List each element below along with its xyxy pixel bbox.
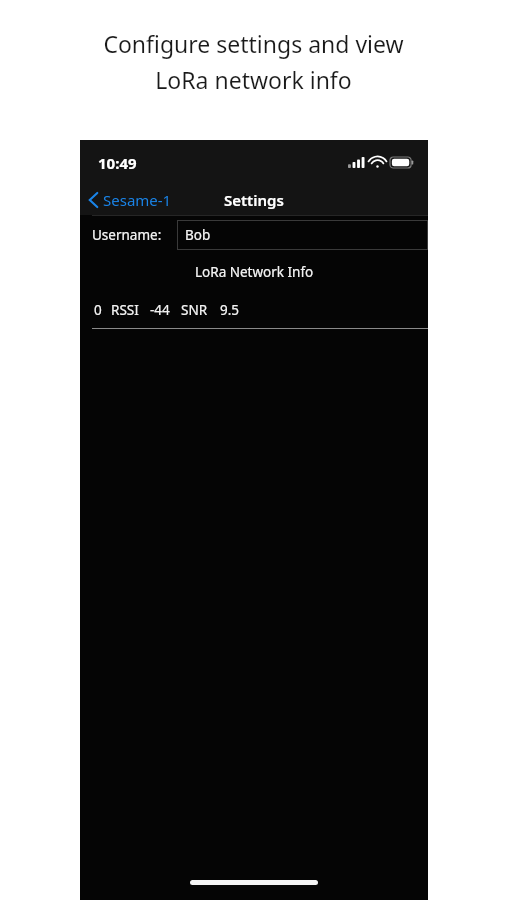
- staticText: Settings: [224, 190, 284, 210]
- other: Battery: [390, 157, 414, 168]
- other: Cellular signal: [348, 157, 365, 168]
- staticText: SNR: [181, 301, 208, 319]
- staticText: Username:: [92, 226, 162, 244]
- staticText: LoRa network info: [155, 64, 352, 95]
- staticText: RSSI: [111, 301, 139, 319]
- button[interactable]: Bob: [177, 220, 428, 250]
- other: Wi-Fi: [370, 157, 385, 168]
- staticText: Bob: [185, 226, 211, 244]
- button[interactable]: Sesame-1: [80, 187, 180, 213]
- staticText: 0: [94, 301, 102, 319]
- staticText: Sesame-1: [103, 190, 172, 210]
- staticText: LoRa Network Info: [195, 263, 314, 281]
- staticText: -44: [150, 301, 170, 319]
- button[interactable]: Username:: [80, 216, 428, 253]
- staticText: 10:49: [98, 153, 137, 173]
- staticText: Configure settings and view: [103, 28, 404, 59]
- staticText: 9.5: [220, 301, 240, 319]
- button[interactable]: LoRa Network Info: [80, 253, 428, 291]
